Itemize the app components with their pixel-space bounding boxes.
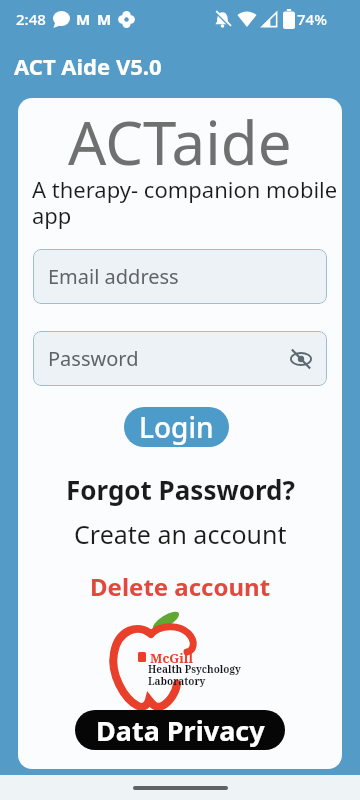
- staticText: A therapy- companion mobile app: [32, 174, 338, 231]
- staticText: 74%: [297, 9, 327, 29]
- button[interactable]: Forgot Password?: [66, 472, 295, 507]
- staticText: ACT Aide V5.0: [14, 51, 162, 81]
- staticText: Health Psychology: [148, 662, 241, 676]
- staticText: Data Privacy: [96, 712, 265, 749]
- staticText: Email address: [48, 263, 179, 290]
- button[interactable]: Password: [33, 331, 327, 386]
- staticText: Login: [139, 408, 214, 446]
- staticText: M: [76, 9, 91, 29]
- button[interactable]: Create an account: [74, 517, 287, 551]
- staticText: M: [97, 9, 112, 29]
- staticText: ACTaide: [68, 101, 292, 183]
- staticText: Password: [48, 345, 139, 372]
- staticText: McGill: [150, 649, 193, 667]
- button[interactable]: Email address: [33, 249, 327, 304]
- button[interactable]: McGill: [108, 606, 258, 716]
- button[interactable]: Login: [124, 407, 229, 447]
- staticText: Laboratory: [148, 674, 206, 688]
- button[interactable]: Delete account: [90, 570, 271, 603]
- staticText: 2:48: [16, 9, 46, 29]
- button[interactable]: Data Privacy: [75, 710, 285, 750]
